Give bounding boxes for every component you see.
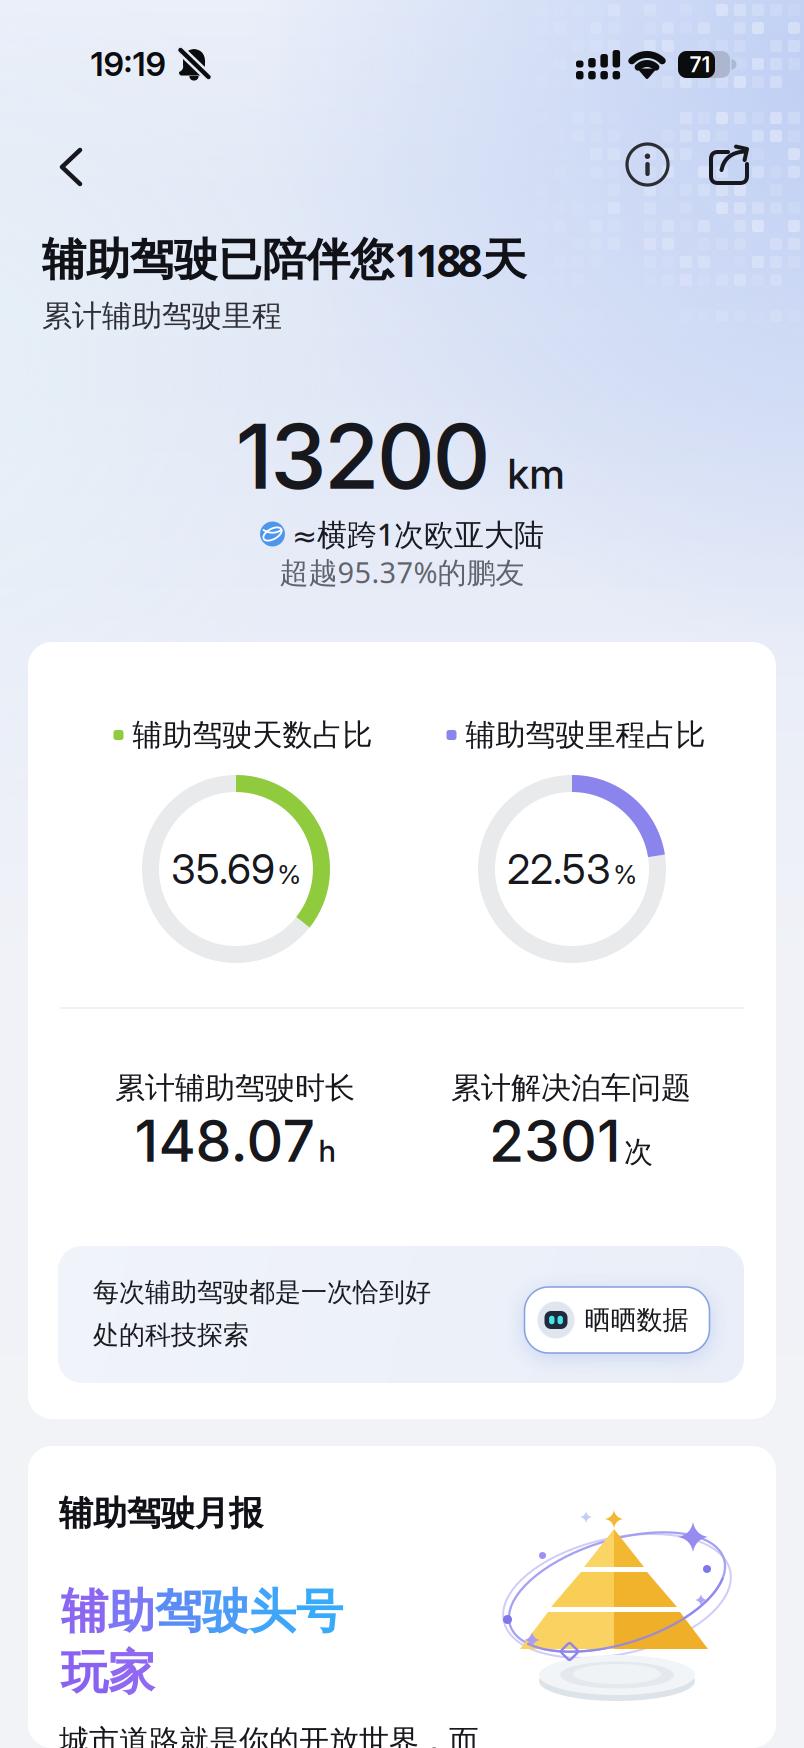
staticText: h — [318, 1133, 335, 1169]
staticText: ≈横跨1次欧亚大陆 — [292, 514, 544, 554]
staticText: 2301 — [489, 1106, 621, 1175]
button[interactable]: 辅助驾驶月报 — [28, 1446, 776, 1748]
staticText: 辅助驾驶天数占比 — [132, 716, 372, 754]
staticText: 71 — [689, 52, 710, 77]
staticText: 辅 — [61, 1582, 108, 1641]
staticText: 148.07 — [134, 1106, 315, 1175]
staticText: 1188 — [394, 230, 483, 290]
staticText: 城市道路就是你的开放世界，而 — [59, 1722, 479, 1748]
staticText: km — [508, 449, 565, 499]
staticText: % — [277, 859, 301, 890]
button[interactable]: Back — [58, 148, 84, 186]
staticText: 累计辅助驾驶时长 — [115, 1069, 355, 1107]
staticText: 累计解决泊车问题 — [451, 1069, 691, 1107]
staticText: 次 — [624, 1134, 653, 1170]
staticText: 35.69 — [171, 844, 275, 894]
staticText: 晒晒数据 — [584, 1304, 688, 1336]
button[interactable]: 晒晒数据 — [524, 1287, 709, 1353]
staticText: 处的科技探索 — [93, 1319, 249, 1352]
staticText: 家 — [108, 1643, 155, 1702]
staticText: 头 — [249, 1582, 296, 1641]
staticText: 累计辅助驾驶里程 — [42, 297, 282, 335]
staticText: 13200 — [235, 402, 491, 510]
staticText: 超越95.37%的鹏友 — [279, 552, 524, 592]
staticText: 辅助驾驶月报 — [59, 1492, 263, 1535]
staticText: 19:19 — [90, 44, 165, 84]
staticText: 天 — [483, 232, 527, 288]
staticText: 助 — [108, 1582, 155, 1641]
staticText: 玩 — [61, 1643, 108, 1702]
staticText: 驶 — [202, 1582, 249, 1641]
staticText: 辅助驾驶里程占比 — [465, 716, 705, 754]
button[interactable]: Info — [624, 141, 668, 185]
staticText: 辅助驾驶已陪伴您 — [42, 232, 394, 288]
staticText: 号 — [296, 1582, 343, 1641]
staticText: % — [613, 859, 637, 890]
staticText: 22.53 — [507, 844, 611, 894]
button[interactable]: Share — [707, 143, 753, 185]
staticText: 每次辅助驾驶都是一次恰到好 — [93, 1276, 431, 1309]
staticText: 驾 — [155, 1582, 202, 1641]
